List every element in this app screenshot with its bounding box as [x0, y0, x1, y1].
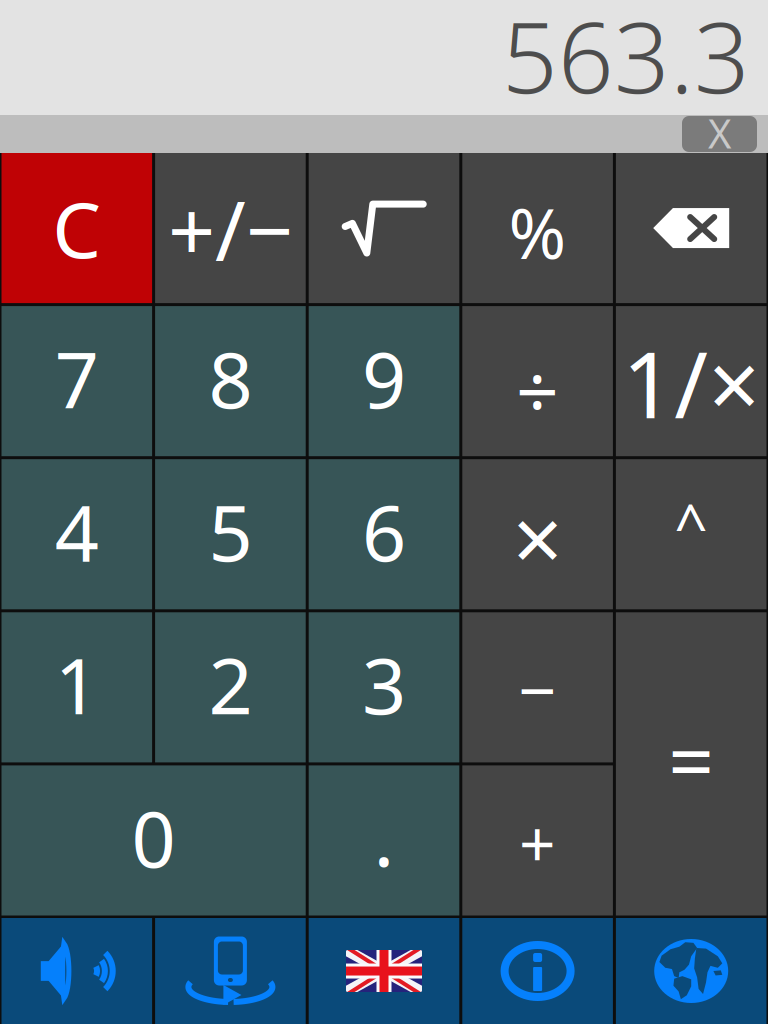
button[interactable]: ÷ — [462, 306, 613, 456]
button[interactable]: 0 — [1, 765, 306, 915]
button[interactable]: 1/× — [616, 306, 766, 456]
staticText: 1/× — [622, 323, 760, 443]
staticText: 3 — [362, 633, 406, 736]
button[interactable]: . — [309, 765, 459, 915]
button[interactable]: 5 — [155, 459, 306, 609]
button[interactable]: ^ — [616, 459, 766, 609]
staticText: 7 — [55, 327, 99, 429]
staticText: 4 — [55, 480, 99, 583]
button[interactable]: Close — [682, 116, 757, 152]
button[interactable]: − — [462, 612, 613, 762]
staticText: + — [519, 800, 556, 885]
button[interactable]: 4 — [1, 459, 152, 609]
staticText: 2 — [208, 633, 252, 736]
button[interactable]: C — [1, 153, 152, 303]
button[interactable]: % — [462, 153, 613, 303]
staticText: ^ — [674, 485, 708, 563]
button[interactable]: Language — [309, 918, 459, 1024]
button[interactable]: 3 — [309, 612, 459, 762]
staticText: 8 — [208, 327, 252, 429]
button[interactable]: Web — [616, 918, 766, 1024]
button[interactable]: × — [462, 459, 613, 609]
button[interactable]: +/− — [155, 153, 306, 303]
staticText: = — [668, 706, 714, 812]
staticText: × — [513, 479, 563, 596]
staticText: C — [52, 177, 101, 279]
staticText: 1 — [55, 633, 99, 736]
staticText: 0 — [132, 786, 176, 889]
button[interactable]: Square root — [309, 153, 459, 303]
button[interactable]: 1 — [1, 612, 152, 762]
staticText: − — [519, 645, 557, 734]
button[interactable]: Info — [462, 918, 613, 1024]
button[interactable]: 6 — [309, 459, 459, 609]
button[interactable]: 8 — [155, 306, 306, 456]
staticText: ÷ — [516, 341, 559, 440]
button[interactable]: 7 — [1, 306, 152, 456]
staticText: 6 — [362, 480, 406, 583]
button[interactable]: + — [462, 765, 613, 915]
button[interactable]: Rotate — [155, 918, 306, 1024]
staticText: % — [509, 186, 567, 278]
button[interactable]: 9 — [309, 306, 459, 456]
staticText: 563.3 — [502, 0, 750, 120]
staticText: . — [373, 785, 394, 888]
staticText: 9 — [362, 327, 406, 429]
staticText: +/− — [168, 174, 293, 284]
staticText: X — [708, 106, 731, 159]
button[interactable]: Sound — [1, 918, 152, 1024]
staticText: 5 — [208, 480, 252, 583]
button[interactable]: = — [616, 612, 766, 915]
button[interactable]: Backspace — [616, 153, 766, 303]
button[interactable]: 2 — [155, 612, 306, 762]
